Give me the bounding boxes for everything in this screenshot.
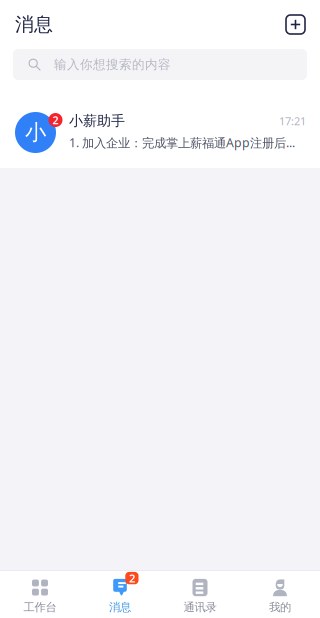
button[interactable]: 输入你想搜索的内容 <box>13 49 307 80</box>
staticText: 输入你想搜索的内容 <box>54 57 171 72</box>
staticText: 1. 加入企业：完成掌上薪福通App注册后... <box>69 134 295 151</box>
button[interactable]: 我的 <box>240 567 320 618</box>
staticText: 消息 <box>15 13 53 36</box>
staticText: 通讯录 <box>183 600 216 614</box>
staticText: 消息 <box>109 600 131 614</box>
button[interactable]: New message <box>278 9 313 40</box>
button[interactable]: 通讯录 <box>160 567 240 618</box>
staticText: 2 <box>129 571 135 586</box>
staticText: 小 <box>25 119 46 146</box>
staticText: 2 <box>52 113 58 127</box>
button[interactable]: 工作台 <box>0 567 80 618</box>
staticText: 工作台 <box>23 600 56 614</box>
button[interactable]: 2 <box>80 567 160 618</box>
staticText: 17:21 <box>279 113 306 128</box>
staticText: 小薪助手 <box>69 112 125 129</box>
staticText: 我的 <box>269 600 291 614</box>
button[interactable]: 小 <box>0 95 320 168</box>
